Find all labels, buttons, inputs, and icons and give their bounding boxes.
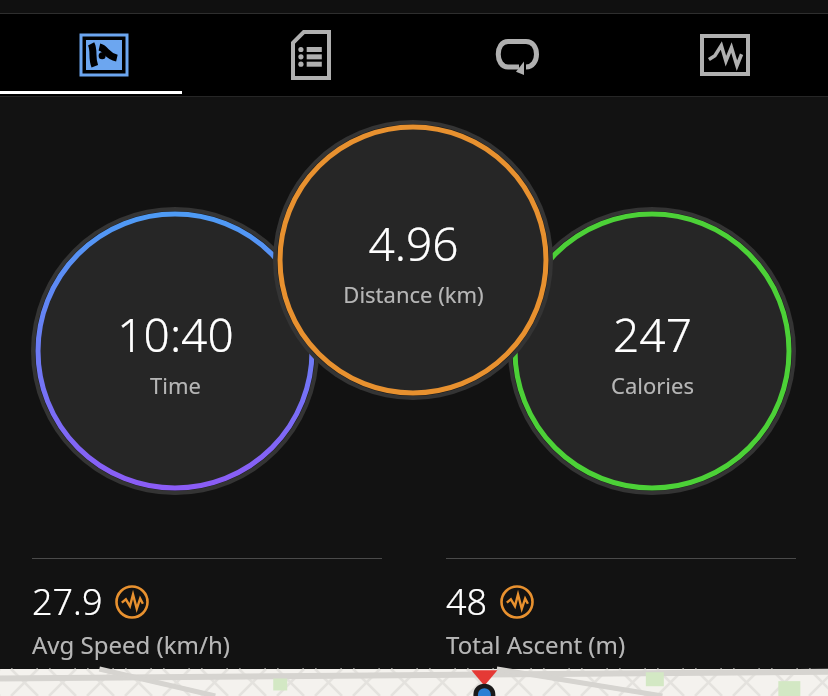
staticText: 48: [446, 577, 488, 626]
button[interactable]: Laps: [414, 14, 621, 96]
button[interactable]: 48: [446, 558, 796, 661]
staticText: Total Ascent (m): [446, 628, 626, 661]
staticText: Time: [150, 370, 201, 400]
button[interactable]: 10:40: [45, 291, 305, 411]
button[interactable]: 247: [522, 291, 782, 411]
button[interactable]: Details: [207, 14, 414, 96]
button[interactable]: Graphs: [621, 14, 828, 96]
staticText: 10:40: [117, 303, 234, 366]
staticText: 27.9: [32, 577, 103, 626]
button[interactable]: 4.96: [283, 200, 543, 320]
staticText: Calories: [611, 370, 694, 400]
staticText: Avg Speed (km/h): [32, 628, 230, 661]
staticText: 247: [613, 303, 692, 366]
staticText: Distance (km): [343, 279, 484, 309]
button[interactable]: Map route: [0, 14, 207, 96]
staticText: 4.96: [368, 212, 459, 275]
button[interactable]: 27.9: [32, 558, 382, 661]
